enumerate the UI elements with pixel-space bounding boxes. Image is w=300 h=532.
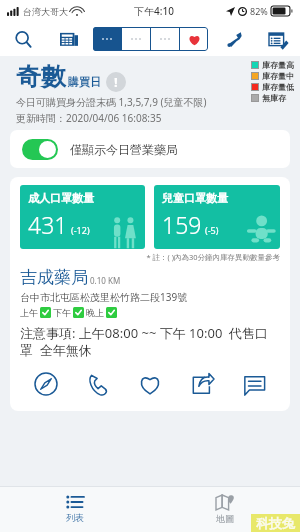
staticText: 地圖 (216, 513, 234, 524)
staticText: 431 (28, 209, 68, 240)
button[interactable]: News (52, 22, 86, 56)
staticText: 注意事項: 上午08:00 ~~ 下午 10:00 代售口罩 全年無休 (20, 324, 280, 359)
button[interactable]: Call (78, 367, 118, 401)
staticText: 庫存量低 (262, 82, 294, 92)
button[interactable]: 列表 (0, 486, 150, 532)
button[interactable]: Filter all (93, 27, 121, 51)
button[interactable]: Navigate (26, 367, 66, 401)
button[interactable]: Filter adult (122, 27, 150, 51)
staticText: 奇數 (16, 61, 66, 92)
staticText: 更新時間：2020/04/06 16:08:35 (16, 111, 162, 125)
button[interactable]: Filter child (151, 27, 179, 51)
button[interactable]: Settings (216, 22, 250, 56)
staticText: 兒童口罩數量 (162, 191, 228, 205)
button[interactable]: Share (182, 367, 222, 401)
staticText: 下午 (53, 307, 71, 318)
button[interactable]: Favourite (130, 367, 170, 401)
staticText: 晚上 (86, 307, 104, 318)
staticText: 庫存量高 (262, 60, 294, 70)
button[interactable]: 僅顯示今日營業藥局 (10, 130, 290, 168)
staticText: 列表 (66, 512, 84, 523)
staticText: (-12) (71, 224, 90, 236)
staticText: ! (114, 73, 118, 91)
staticText: 159 (162, 209, 202, 240)
button[interactable]: Comment (234, 367, 274, 401)
button[interactable]: Report (260, 22, 294, 56)
staticText: 下午4:10 (134, 4, 174, 18)
staticText: 庫存量中 (262, 71, 294, 81)
staticText: * 註：( )內為30分鐘內庫存異動數量參考 (20, 252, 280, 262)
staticText: 成人口罩數量 (28, 191, 94, 205)
staticText: 科技兔 (256, 515, 295, 531)
staticText: 上午 (20, 307, 38, 318)
staticText: 82% (250, 5, 268, 17)
button[interactable]: 成人口罩數量 (20, 185, 145, 249)
staticText: (-5) (205, 224, 219, 236)
staticText: 購買日 (68, 75, 101, 89)
button[interactable]: Info (106, 72, 126, 92)
button[interactable]: 成人口罩數量 (10, 177, 290, 411)
button[interactable]: 地圖 (150, 486, 300, 532)
staticText: 台中市北屯區松茂里松竹路二段139號 (20, 290, 188, 304)
staticText: 今日可購買身分證末碼 1,3,5,7,9 (兒童不限) (16, 95, 207, 109)
button[interactable]: 兒童口罩數量 (154, 185, 280, 249)
staticText: 吉成藥局 (20, 267, 88, 288)
staticText: 0.10 KM (90, 275, 121, 286)
staticText: 無庫存 (262, 93, 286, 103)
button[interactable]: Favourites (180, 27, 208, 51)
button[interactable]: Search (6, 22, 40, 56)
staticText: 僅顯示今日營業藥局 (70, 142, 178, 157)
staticText: 台湾大哥大 (23, 6, 68, 17)
